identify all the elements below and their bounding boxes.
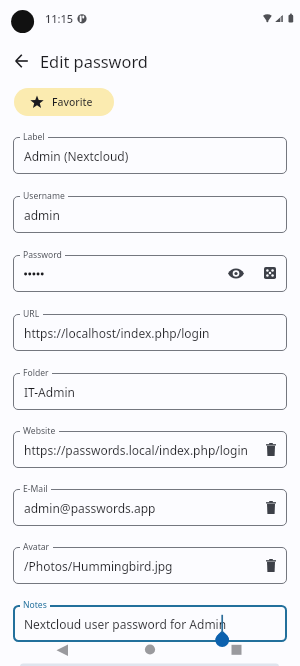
- staticText: Username: [23, 190, 65, 202]
- staticText: Nextcloud user password for Admin: [24, 616, 227, 632]
- staticText: Notes: [23, 599, 47, 611]
- button[interactable]: E-Mail: [13, 489, 287, 526]
- button[interactable]: Delete: [260, 438, 282, 460]
- button[interactable]: Back: [0, 643, 100, 666]
- button[interactable]: Delete: [260, 496, 282, 518]
- button[interactable]: Folder: [13, 373, 287, 410]
- button[interactable]: Website: [13, 431, 287, 468]
- button[interactable]: Label: [13, 137, 287, 174]
- staticText: Admin (Nextcloud): [24, 148, 129, 164]
- button[interactable]: Show password: [225, 262, 247, 284]
- button[interactable]: Recent apps: [200, 643, 300, 666]
- staticText: admin: [24, 207, 60, 223]
- button[interactable]: Avatar: [13, 547, 287, 584]
- staticText: Edit password: [40, 50, 148, 72]
- staticText: Label: [23, 131, 45, 143]
- staticText: admin@passwords.app: [24, 500, 156, 516]
- staticText: Favorite: [52, 95, 93, 109]
- button[interactable]: Favorite: [14, 88, 114, 116]
- staticText: URL: [23, 308, 40, 320]
- staticText: https://localhost/index.php/login: [24, 325, 210, 341]
- button[interactable]: URL: [13, 314, 287, 351]
- staticText: Folder: [23, 367, 49, 379]
- button[interactable]: Generate password: [259, 262, 281, 284]
- staticText: 11:15: [45, 11, 74, 26]
- button[interactable]: Notes: [13, 605, 287, 642]
- staticText: Website: [23, 425, 56, 437]
- button[interactable]: Username: [13, 196, 287, 233]
- staticText: /Photos/Hummingbird.jpg: [24, 558, 173, 574]
- staticText: Password: [23, 249, 62, 261]
- button[interactable]: Password: [13, 255, 287, 292]
- staticText: https://passwords.local/index.php/login: [24, 442, 248, 458]
- staticText: Avatar: [23, 541, 50, 553]
- staticText: E-Mail: [23, 483, 48, 495]
- button[interactable]: Back: [4, 44, 38, 78]
- button[interactable]: Delete: [260, 554, 282, 576]
- button[interactable]: Home: [100, 643, 200, 666]
- staticText: IT-Admin: [24, 384, 75, 400]
